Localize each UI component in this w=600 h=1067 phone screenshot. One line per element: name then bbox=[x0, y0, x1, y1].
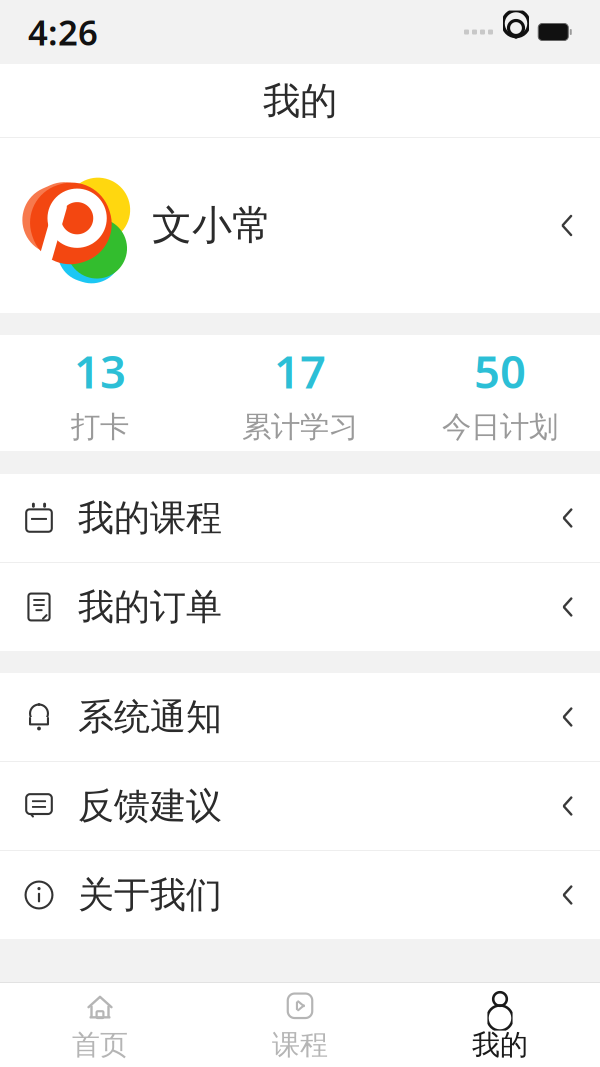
staticText: 我的课程 bbox=[78, 496, 222, 540]
staticText: 13 bbox=[74, 341, 126, 401]
staticText: 我的 bbox=[472, 1028, 528, 1062]
button[interactable]: 首页 bbox=[0, 983, 200, 1067]
staticText: 今日计划 bbox=[442, 409, 558, 445]
staticText: 17 bbox=[274, 341, 326, 401]
button[interactable]: 系统通知 bbox=[0, 673, 600, 762]
staticText: 反馈建议 bbox=[78, 784, 222, 828]
button[interactable]: 我的订单 bbox=[0, 563, 600, 651]
staticText: 课程 bbox=[272, 1028, 328, 1062]
staticText: 文小常 bbox=[152, 201, 272, 250]
staticText: 50 bbox=[474, 341, 526, 401]
button[interactable]: 文小常 bbox=[0, 138, 600, 313]
button[interactable]: 课程 bbox=[200, 983, 400, 1067]
button[interactable]: 我的 bbox=[400, 983, 600, 1067]
staticText: 关于我们 bbox=[78, 873, 222, 917]
button[interactable]: 关于我们 bbox=[0, 851, 600, 939]
staticText: 首页 bbox=[72, 1028, 128, 1062]
staticText: 4:26 bbox=[28, 9, 98, 55]
button[interactable]: 反馈建议 bbox=[0, 762, 600, 851]
staticText: 系统通知 bbox=[78, 695, 222, 739]
staticText: 我的 bbox=[263, 78, 337, 124]
staticText: 打卡 bbox=[71, 409, 129, 445]
button[interactable]: 我的课程 bbox=[0, 474, 600, 563]
staticText: 我的订单 bbox=[78, 585, 222, 629]
staticText: 累计学习 bbox=[242, 409, 358, 445]
